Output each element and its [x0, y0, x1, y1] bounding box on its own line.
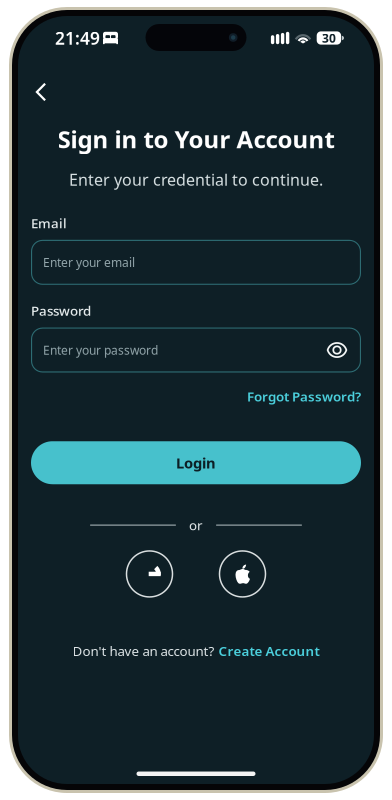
- staticText: Enter your password: [43, 342, 158, 358]
- staticText: Password: [31, 302, 91, 319]
- button[interactable]: Create Account: [218, 642, 319, 660]
- button[interactable]: Forgot Password?: [247, 387, 361, 405]
- staticText: Sign in to Your Account: [57, 123, 334, 155]
- staticText: Forgot Password?: [247, 387, 361, 405]
- staticText: Email: [31, 214, 67, 232]
- staticText: Enter your email: [43, 254, 135, 270]
- button[interactable]: Sign in with Google: [126, 551, 172, 597]
- button[interactable]: Login: [31, 441, 361, 484]
- staticText: Create Account: [218, 642, 319, 660]
- staticText: Login: [176, 453, 216, 472]
- staticText: Enter your credential to continue.: [69, 169, 323, 190]
- staticText: Don't have an account?: [72, 642, 214, 660]
- button[interactable]: Back: [24, 76, 58, 108]
- staticText: or: [189, 516, 203, 534]
- button[interactable]: Sign in with Apple: [219, 551, 265, 597]
- staticText: 21:49: [55, 26, 100, 49]
- staticText: 30: [322, 30, 336, 46]
- button[interactable]: Show password: [321, 334, 353, 366]
